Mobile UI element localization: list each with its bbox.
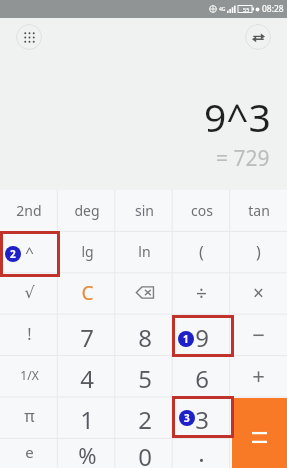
- staticText: 9: [195, 321, 209, 354]
- staticText: 2: [10, 247, 16, 261]
- staticText: ): [256, 241, 261, 263]
- button[interactable]: 2: [116, 395, 173, 436]
- button[interactable]: Swap units: [245, 24, 271, 50]
- other: Backspace: [136, 286, 154, 299]
- button[interactable]: Keypad: [16, 24, 42, 50]
- button[interactable]: sin: [116, 190, 173, 231]
- button[interactable]: 0: [116, 436, 173, 468]
- button[interactable]: 8: [116, 313, 173, 354]
- staticText: = 729: [216, 144, 270, 173]
- button[interactable]: −: [230, 313, 287, 354]
- button[interactable]: Equals: [232, 398, 287, 468]
- button[interactable]: [230, 395, 287, 436]
- staticText: 4: [80, 362, 94, 395]
- button[interactable]: cos: [173, 190, 230, 231]
- staticText: %: [78, 440, 97, 468]
- button[interactable]: .: [173, 436, 230, 468]
- staticText: 9^3: [204, 90, 271, 143]
- button[interactable]: ): [230, 231, 287, 272]
- staticText: 1/X: [20, 367, 39, 383]
- staticText: 08:28: [262, 3, 284, 15]
- staticText: .: [198, 436, 205, 468]
- staticText: cos: [191, 201, 213, 220]
- button[interactable]: lg: [58, 231, 116, 272]
- staticText: 2: [138, 403, 152, 436]
- staticText: sin: [135, 201, 154, 220]
- button[interactable]: √: [0, 272, 58, 313]
- button[interactable]: π: [0, 395, 58, 436]
- staticText: 0: [138, 440, 152, 468]
- button[interactable]: (: [173, 231, 230, 272]
- button[interactable]: 3: [173, 395, 230, 436]
- staticText: 6: [195, 362, 209, 395]
- staticText: (: [199, 241, 204, 263]
- staticText: ×: [253, 280, 264, 306]
- staticText: 5: [138, 362, 152, 395]
- staticText: π: [24, 405, 35, 427]
- staticText: 7: [80, 321, 94, 354]
- staticText: ÷: [196, 280, 207, 306]
- staticText: −: [252, 319, 265, 349]
- staticText: !: [27, 323, 32, 345]
- staticText: tan: [248, 201, 270, 220]
- button[interactable]: deg: [58, 190, 116, 231]
- staticText: +: [252, 360, 265, 390]
- button[interactable]: ×: [230, 272, 287, 313]
- staticText: 1: [183, 332, 189, 346]
- button[interactable]: tan: [230, 190, 287, 231]
- staticText: ln: [138, 242, 151, 261]
- button[interactable]: 6: [173, 354, 230, 395]
- button[interactable]: ÷: [173, 272, 230, 313]
- button[interactable]: C: [58, 272, 116, 313]
- staticText: 1: [80, 403, 94, 436]
- button[interactable]: %: [58, 436, 116, 468]
- staticText: 55: [243, 6, 250, 13]
- staticText: 2nd: [16, 201, 42, 220]
- button[interactable]: 2nd: [0, 190, 58, 231]
- staticText: C: [81, 280, 94, 306]
- button[interactable]: Backspace: [116, 272, 173, 313]
- button[interactable]: !: [0, 313, 58, 354]
- button[interactable]: +: [230, 354, 287, 395]
- button[interactable]: e: [0, 436, 58, 468]
- staticText: e: [25, 442, 34, 462]
- button[interactable]: ^: [0, 231, 58, 272]
- staticText: 4G: [219, 6, 226, 13]
- button[interactable]: 4: [58, 354, 116, 395]
- button[interactable]: 7: [58, 313, 116, 354]
- staticText: 3: [184, 411, 190, 425]
- button[interactable]: [230, 436, 287, 468]
- staticText: 8: [138, 321, 152, 354]
- button[interactable]: 1: [58, 395, 116, 436]
- staticText: 3: [195, 403, 209, 436]
- staticText: √: [24, 283, 35, 302]
- button[interactable]: 5: [116, 354, 173, 395]
- button[interactable]: 9: [173, 313, 230, 354]
- staticText: lg: [81, 242, 94, 261]
- staticText: deg: [74, 201, 100, 220]
- staticText: ^: [25, 242, 34, 262]
- button[interactable]: 1/X: [0, 354, 58, 395]
- button[interactable]: ln: [116, 231, 173, 272]
